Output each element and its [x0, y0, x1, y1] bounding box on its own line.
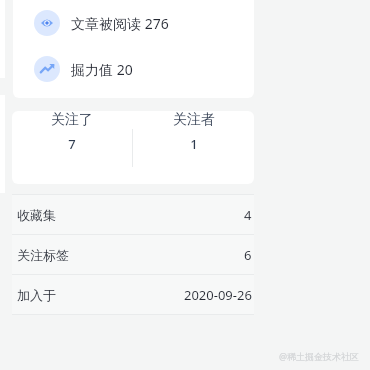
staticText: 掘力值 20 [71, 60, 133, 79]
staticText: 收藏集 [17, 207, 56, 223]
staticText: 关注标签 [17, 247, 69, 263]
staticText: 2020-09-26 [184, 286, 252, 304]
button[interactable]: 文章被阅读 276 [13, 0, 254, 46]
staticText: 1 [190, 135, 198, 153]
button[interactable]: 关注了 [12, 111, 132, 153]
button[interactable]: 加入于 [12, 275, 254, 314]
button[interactable]: 掘力值 20 [13, 46, 254, 92]
button[interactable]: 关注标签 [12, 235, 254, 274]
button[interactable]: 收藏集 [12, 195, 254, 234]
staticText: 关注了 [51, 111, 93, 129]
staticText: 4 [244, 206, 252, 224]
staticText: 文章被阅读 276 [71, 14, 169, 33]
staticText: 关注者 [173, 111, 215, 129]
staticText: 6 [244, 246, 252, 264]
staticText: 加入于 [17, 287, 56, 303]
button[interactable]: 关注者 [133, 111, 254, 153]
staticText: @稀土掘金技术社区 [279, 350, 360, 362]
staticText: 7 [68, 135, 76, 153]
